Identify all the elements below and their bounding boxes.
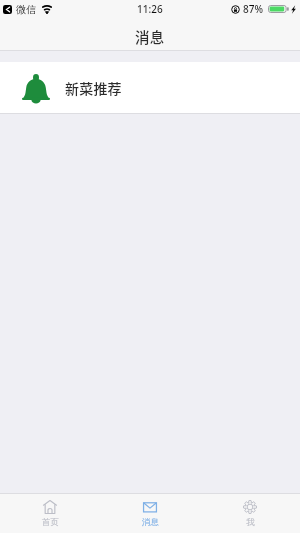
staticText: 新菜推荐 (65, 78, 122, 98)
staticText: 消息 (135, 26, 165, 47)
button[interactable]: Back to WeChat (3, 3, 52, 16)
button[interactable]: 我 (200, 493, 300, 528)
button[interactable]: 首页 (0, 493, 100, 528)
other: Rotation lock (231, 5, 240, 14)
button[interactable]: 消息 (100, 493, 200, 528)
staticText: 我 (246, 517, 255, 528)
staticText: 87% (243, 2, 263, 16)
button[interactable]: 新菜推荐 (0, 62, 300, 114)
staticText: 首页 (42, 517, 59, 528)
staticText: 微信 (16, 3, 36, 16)
staticText: 消息 (142, 517, 159, 528)
staticText: 11:26 (137, 2, 163, 16)
